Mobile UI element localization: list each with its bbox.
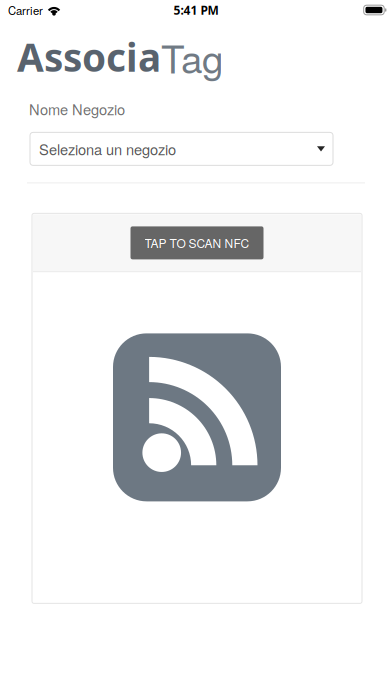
staticText: Nome Negozio: [29, 98, 125, 119]
button[interactable]: TAP TO SCAN NFC: [130, 226, 263, 259]
staticText: Carrier: [8, 2, 43, 18]
button[interactable]: Seleziona un negozio: [30, 132, 333, 165]
staticText: 5:41 PM: [173, 2, 218, 18]
staticText: Associa: [17, 30, 161, 83]
staticText: Tag: [161, 29, 223, 84]
staticText: TAP TO SCAN NFC: [144, 234, 249, 251]
staticText: Seleziona un negozio: [39, 138, 176, 159]
